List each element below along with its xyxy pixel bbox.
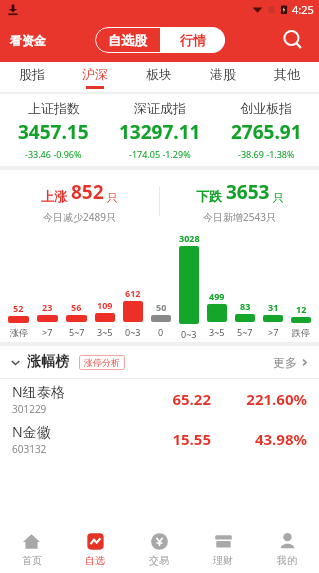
button[interactable]: 自选股 bbox=[95, 27, 160, 53]
button[interactable]: 56 bbox=[62, 301, 91, 342]
button[interactable]: 上证指数 bbox=[0, 94, 107, 166]
staticText: 65.22 bbox=[121, 389, 211, 409]
button[interactable]: 涨幅榜 bbox=[10, 353, 69, 371]
staticText: 港股 bbox=[210, 66, 236, 82]
staticText: 理财 bbox=[213, 554, 233, 567]
button[interactable]: 50 bbox=[147, 301, 175, 342]
button[interactable]: 上涨 bbox=[0, 179, 159, 224]
staticText: 创业板指 bbox=[240, 100, 292, 116]
staticText: 52 bbox=[13, 302, 24, 314]
button[interactable]: Search bbox=[277, 24, 309, 56]
staticText: 0 bbox=[158, 326, 164, 338]
staticText: 83 bbox=[240, 300, 251, 312]
staticText: 只 bbox=[104, 190, 118, 205]
button[interactable]: 理财 bbox=[191, 525, 255, 573]
staticText: 涨停分析 bbox=[84, 357, 120, 368]
staticText: >7 bbox=[268, 326, 279, 338]
staticText: 我的 bbox=[277, 554, 297, 567]
staticText: 只 bbox=[270, 190, 284, 205]
staticText: 板块 bbox=[146, 66, 172, 82]
staticText: 603132 bbox=[12, 442, 47, 456]
button[interactable]: 23 bbox=[33, 301, 62, 342]
staticText: 15.55 bbox=[121, 429, 211, 449]
button[interactable]: 其他 bbox=[255, 62, 319, 92]
button[interactable]: 板块 bbox=[127, 62, 191, 92]
staticText: 上证指数 bbox=[28, 100, 80, 116]
staticText: 跌停 bbox=[292, 327, 310, 338]
staticText: 0~3 bbox=[125, 326, 141, 338]
staticText: -174.05 -1.29% bbox=[129, 148, 191, 160]
staticText: >7 bbox=[42, 326, 53, 338]
button[interactable]: 沪深 bbox=[63, 62, 127, 92]
button[interactable]: 下跌 bbox=[160, 179, 319, 224]
staticText: 499 bbox=[209, 290, 225, 302]
staticText: 上涨 bbox=[41, 187, 71, 205]
staticText: 109 bbox=[97, 299, 113, 311]
button[interactable]: 更多 bbox=[273, 355, 309, 370]
button[interactable]: 612 bbox=[119, 287, 147, 342]
staticText: 3457.15 bbox=[18, 119, 89, 145]
staticText: 3~5 bbox=[209, 326, 225, 338]
button[interactable]: 看资金 bbox=[8, 29, 48, 52]
staticText: 下跌 bbox=[196, 187, 226, 205]
staticText: 自选股 bbox=[108, 32, 147, 48]
staticText: 涨幅榜 bbox=[27, 353, 69, 371]
staticText: 5~7 bbox=[69, 326, 85, 338]
button[interactable]: 股指 bbox=[0, 62, 63, 92]
button[interactable]: 109 bbox=[91, 299, 119, 342]
staticText: -33.46 -0.96% bbox=[25, 148, 82, 160]
staticText: 3~5 bbox=[97, 326, 113, 338]
button[interactable]: 深证成指 bbox=[107, 94, 213, 166]
button[interactable]: 3028 bbox=[175, 232, 203, 342]
staticText: 看资金 bbox=[10, 33, 46, 48]
button[interactable]: 涨停分析 bbox=[79, 355, 125, 370]
staticText: 0~3 bbox=[181, 328, 197, 340]
staticText: -38.69 -1.38% bbox=[238, 148, 295, 160]
staticText: 221.60% bbox=[217, 389, 307, 409]
button[interactable]: 港股 bbox=[191, 62, 255, 92]
button[interactable]: 创业板指 bbox=[213, 94, 319, 166]
button[interactable]: 自选 bbox=[63, 525, 127, 573]
staticText: 3653 bbox=[226, 179, 270, 205]
staticText: 行情 bbox=[180, 32, 206, 48]
staticText: 56 bbox=[71, 301, 82, 313]
staticText: N纽泰格 bbox=[12, 382, 65, 401]
staticText: 自选 bbox=[85, 554, 105, 567]
staticText: 23 bbox=[42, 301, 53, 313]
button[interactable]: 83 bbox=[231, 300, 259, 342]
button[interactable]: 499 bbox=[203, 290, 231, 342]
button[interactable]: N金徽 bbox=[0, 419, 319, 459]
staticText: 交易 bbox=[149, 554, 169, 567]
staticText: 612 bbox=[125, 287, 141, 299]
button[interactable]: 首页 bbox=[0, 525, 63, 573]
button[interactable]: 52 bbox=[4, 302, 33, 342]
staticText: 12 bbox=[296, 303, 307, 315]
staticText: 更多 bbox=[273, 355, 297, 370]
staticText: 50 bbox=[156, 301, 167, 313]
staticText: 沪深 bbox=[82, 66, 108, 82]
staticText: 其他 bbox=[274, 66, 300, 82]
staticText: 4:25 bbox=[292, 2, 314, 17]
staticText: 涨停 bbox=[10, 327, 28, 338]
staticText: N金徽 bbox=[12, 422, 51, 441]
staticText: 43.98% bbox=[217, 429, 307, 449]
button[interactable]: N纽泰格 bbox=[0, 379, 319, 419]
staticText: 深证成指 bbox=[134, 100, 186, 116]
staticText: 13297.11 bbox=[119, 119, 201, 145]
button[interactable]: 12 bbox=[287, 303, 315, 342]
staticText: 今日减少2489只 bbox=[43, 210, 116, 224]
button[interactable]: 31 bbox=[259, 301, 287, 342]
staticText: 股指 bbox=[19, 66, 45, 82]
staticText: 今日新增2543只 bbox=[203, 210, 276, 224]
staticText: 31 bbox=[268, 301, 279, 313]
button[interactable]: 交易 bbox=[127, 525, 191, 573]
staticText: 301229 bbox=[12, 402, 47, 416]
staticText: 2765.91 bbox=[231, 119, 302, 145]
button[interactable]: 我的 bbox=[255, 525, 319, 573]
staticText: 首页 bbox=[22, 554, 42, 567]
staticText: 3028 bbox=[179, 232, 200, 244]
staticText: 852 bbox=[71, 179, 104, 205]
button[interactable]: 行情 bbox=[160, 27, 225, 53]
staticText: 5~7 bbox=[237, 326, 253, 338]
